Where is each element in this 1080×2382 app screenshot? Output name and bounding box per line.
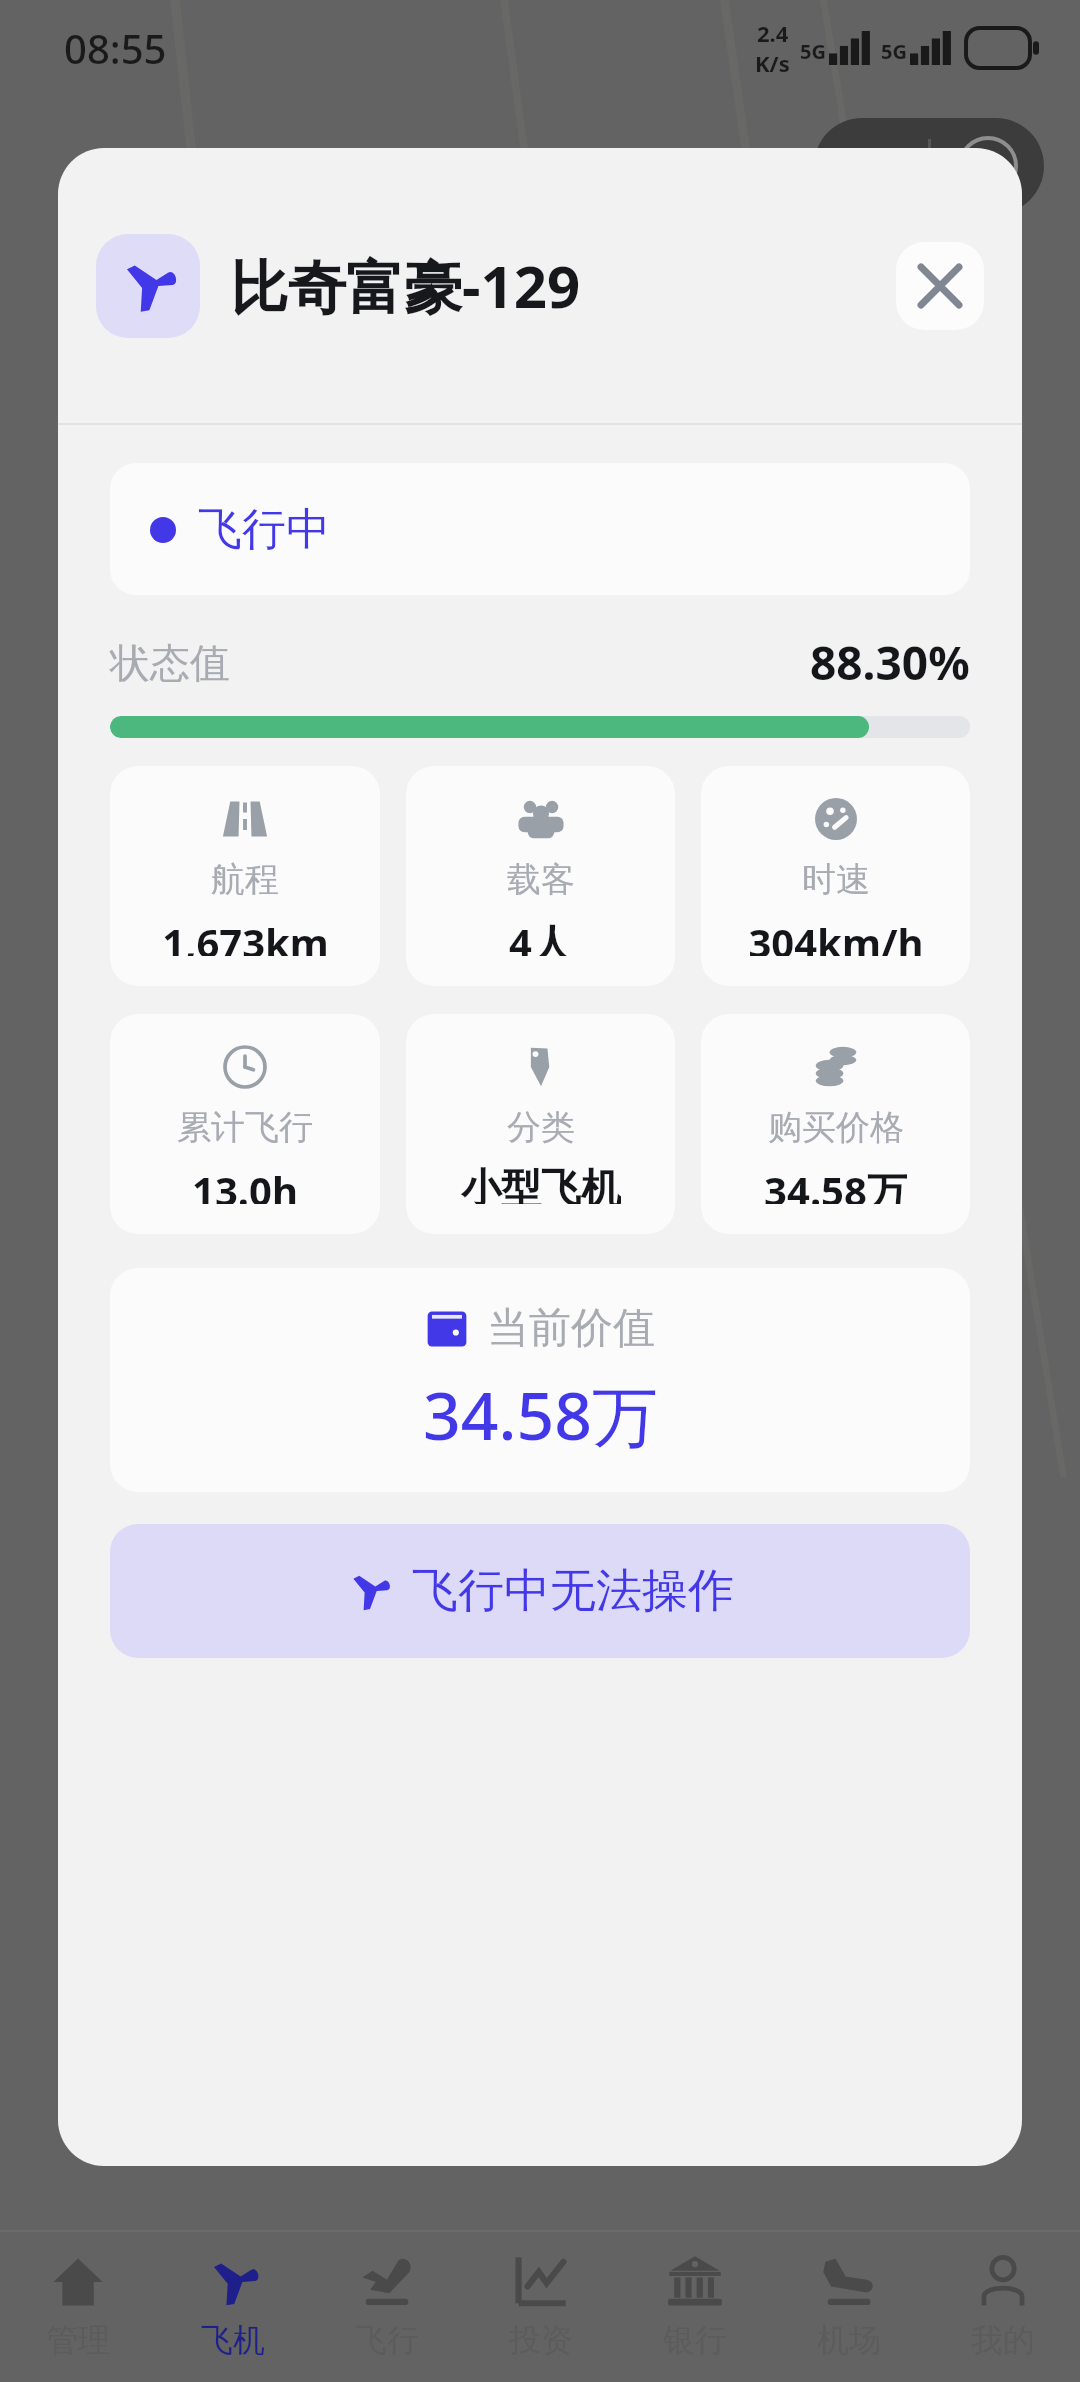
button[interactable]: 飞行中 (110, 463, 970, 595)
staticText: 1,673km (162, 915, 329, 956)
button[interactable]: 飞行 (310, 2232, 464, 2382)
button[interactable]: Floating window controls (814, 118, 1044, 214)
button[interactable]: 航程 (110, 766, 380, 986)
button[interactable]: 购买价格 (701, 1014, 970, 1234)
staticText: 5G (800, 38, 826, 65)
button[interactable]: 时速 (701, 766, 970, 986)
button[interactable]: 投资 (464, 2232, 618, 2382)
staticText: 08:55 (64, 21, 167, 75)
staticText: 飞行中 (198, 502, 330, 557)
staticText: 当前价值 (487, 1302, 655, 1355)
button[interactable]: 飞机 (155, 2232, 310, 2382)
staticText: 累计飞行 (177, 1106, 313, 1149)
staticText: 航程 (211, 858, 279, 901)
button[interactable]: Close (896, 242, 984, 330)
staticText: 载客 (507, 858, 575, 901)
staticText: 时速 (802, 858, 870, 901)
staticText: 4人 (509, 915, 572, 956)
button[interactable]: 我的 (926, 2232, 1080, 2382)
staticText: 飞机 (201, 2320, 265, 2360)
button[interactable]: 累计飞行 (110, 1014, 380, 1234)
button[interactable]: 银行 (618, 2232, 772, 2382)
button[interactable]: 机场 (772, 2232, 926, 2382)
staticText: 购买价格 (768, 1106, 904, 1149)
button[interactable]: 分类 (406, 1014, 675, 1234)
staticText: 比奇富豪-129 (230, 246, 581, 325)
button[interactable]: 载客 (406, 766, 675, 986)
staticText: 34.58万 (764, 1163, 907, 1204)
staticText: 飞行中无法操作 (412, 1562, 734, 1620)
staticText: 状态值 (110, 638, 230, 688)
staticText: 小型飞机 (461, 1163, 621, 1204)
button[interactable]: 当前价值 (110, 1268, 970, 1492)
staticText: K/s (755, 48, 790, 78)
staticText: 304km/h (748, 915, 924, 956)
staticText: 88.30% (810, 631, 970, 694)
staticText: 5G (881, 38, 907, 65)
staticText: 13.0h (192, 1163, 298, 1204)
staticText: 34.58万 (423, 1369, 658, 1459)
staticText: 分类 (507, 1106, 575, 1149)
button[interactable]: 管理 (0, 2232, 155, 2382)
button[interactable]: 飞行中无法操作 (110, 1524, 970, 1658)
staticText: 2.4 (757, 18, 789, 48)
